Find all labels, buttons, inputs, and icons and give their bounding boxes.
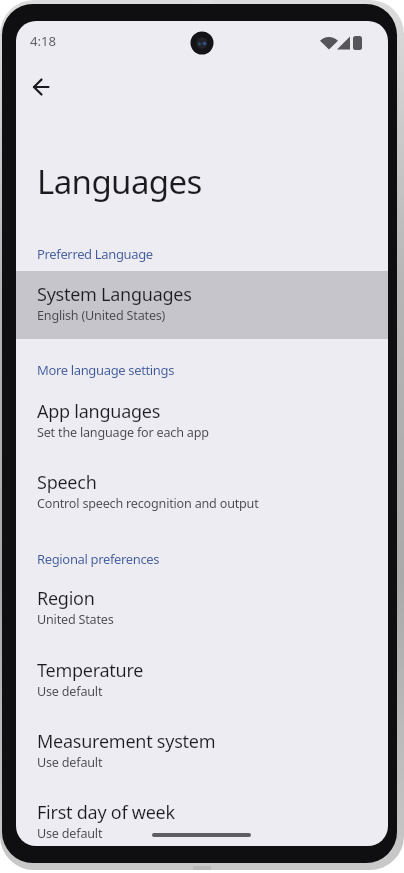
button[interactable]: Temperature xyxy=(16,647,388,715)
staticText: Measurement system xyxy=(37,729,216,754)
staticText: Use default xyxy=(37,683,103,700)
staticText: Control speech recognition and output xyxy=(37,495,259,512)
staticText: Regional preferences xyxy=(37,550,160,568)
staticText: Speech xyxy=(37,470,97,495)
staticText: Preferred Language xyxy=(37,245,153,263)
button[interactable]: Measurement system xyxy=(16,718,388,786)
staticText: Use default xyxy=(37,825,103,842)
button[interactable]: First day of week xyxy=(16,789,388,846)
staticText: Set the language for each app xyxy=(37,424,209,441)
staticText: Use default xyxy=(37,754,103,771)
button[interactable]: Region xyxy=(16,575,388,643)
button[interactable]: System Languages xyxy=(16,271,388,339)
staticText: English (United States) xyxy=(37,307,166,324)
staticText: First day of week xyxy=(37,800,175,825)
staticText: Temperature xyxy=(37,658,144,683)
staticText: United States xyxy=(37,611,114,628)
staticText: 4:18 xyxy=(30,32,57,50)
staticText: System Languages xyxy=(37,282,192,307)
staticText: More language settings xyxy=(37,361,175,379)
button[interactable]: Speech xyxy=(16,459,388,527)
staticText: Region xyxy=(37,586,95,611)
staticText: Languages xyxy=(37,159,202,204)
button[interactable] xyxy=(23,69,59,105)
button[interactable]: App languages xyxy=(16,388,388,456)
staticText: App languages xyxy=(37,399,161,424)
